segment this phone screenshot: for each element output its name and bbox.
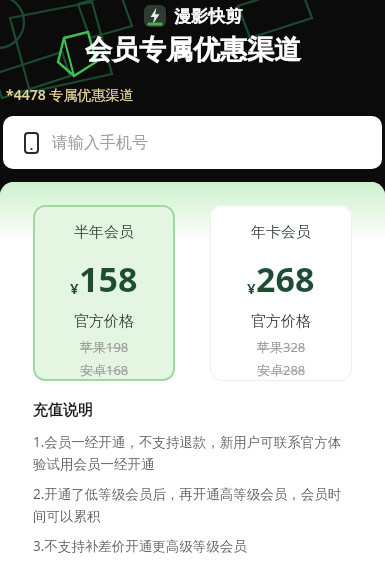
staticText: 1.会员一经开通，不支持退款，新用户可联系官方体验试用会员一经开通 — [33, 433, 352, 473]
staticText: 请输入手机号 — [52, 133, 148, 153]
other: App logo — [144, 5, 166, 27]
staticText: 3.不支持补差价开通更高级等级会员 — [33, 537, 247, 555]
staticText: 安卓168 — [80, 361, 129, 379]
staticText: 半年会员 — [74, 223, 134, 242]
staticText: 漫影快剪 — [174, 6, 242, 27]
staticText: 安卓288 — [257, 361, 306, 379]
staticText: 会员专属优惠渠道 — [85, 33, 301, 67]
staticText: ¥ — [70, 278, 79, 298]
staticText: 158 — [79, 256, 138, 302]
staticText: ¥ — [247, 278, 256, 298]
staticText: 2.开通了低等级会员后，再开通高等级会员，会员时间可以累积 — [33, 485, 352, 525]
button[interactable]: 半年会员 — [33, 205, 175, 381]
staticText: 苹果328 — [257, 338, 306, 356]
staticText: 官方价格 — [74, 312, 134, 331]
staticText: 充值说明 — [33, 401, 93, 420]
button[interactable]: 年卡会员 — [210, 205, 352, 381]
staticText: 官方价格 — [251, 312, 311, 331]
staticText: 268 — [256, 256, 315, 302]
staticText: *4478 专属优惠渠道 — [6, 85, 134, 104]
staticText: 年卡会员 — [251, 223, 311, 242]
staticText: 苹果198 — [80, 338, 129, 356]
button[interactable]: 请输入手机号 — [3, 116, 382, 169]
